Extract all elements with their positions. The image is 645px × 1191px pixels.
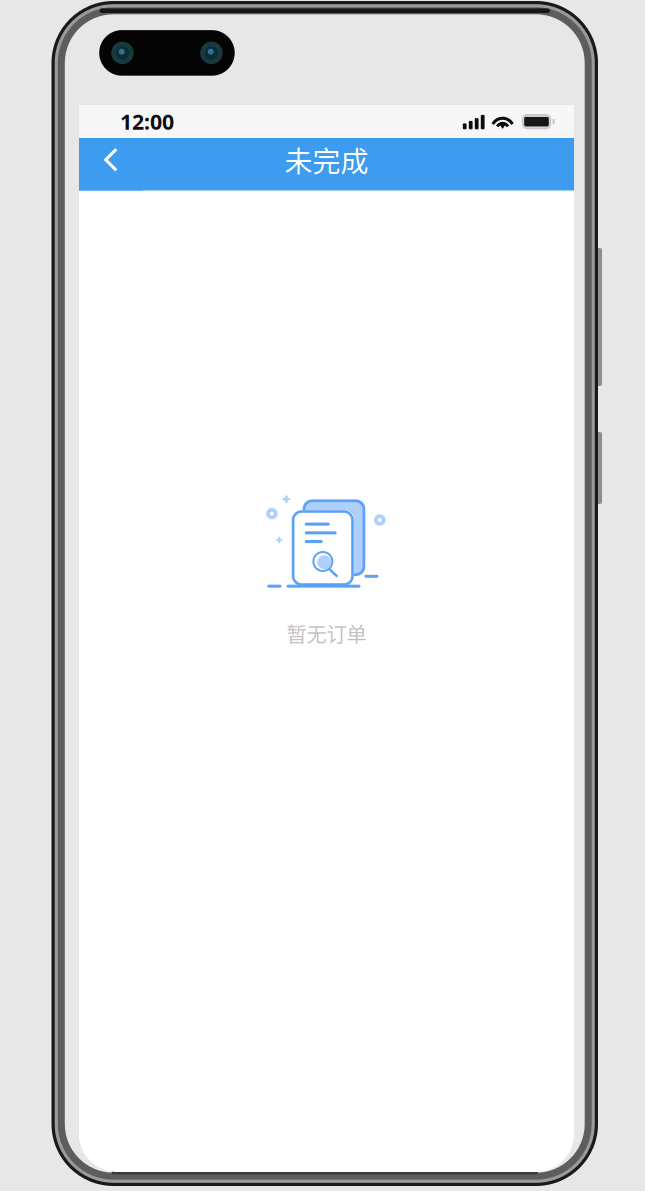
button[interactable]: Back (79, 138, 143, 190)
staticText: 暂无订单 (286, 619, 366, 648)
staticText: 未完成 (284, 139, 368, 180)
staticText: 暂无订单 (286, 619, 366, 648)
staticText: 未完成 (284, 139, 368, 180)
staticText: 12:00 (120, 107, 174, 136)
staticText: 12:00 (120, 107, 174, 136)
button[interactable]: Back (79, 138, 143, 190)
